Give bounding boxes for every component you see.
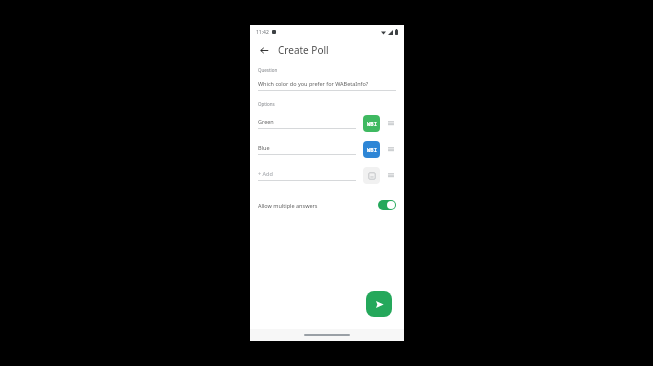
staticText: Options xyxy=(258,101,275,107)
staticText: Create Poll xyxy=(278,43,329,57)
button[interactable]: + Add xyxy=(258,164,396,186)
button[interactable]: Reorder option xyxy=(386,141,396,157)
staticText: Blue xyxy=(258,144,270,151)
staticText: WBI xyxy=(367,146,377,153)
button[interactable]: Send poll xyxy=(366,291,392,317)
button[interactable]: Choose sticker xyxy=(363,167,380,184)
staticText: + Add xyxy=(258,170,273,177)
staticText: Question xyxy=(258,67,278,73)
staticText: Green xyxy=(258,118,274,125)
staticText: Which color do you prefer for WABetaInfo… xyxy=(258,80,369,87)
button[interactable]: Reorder option xyxy=(386,167,396,183)
button[interactable]: Choose sticker xyxy=(363,141,380,158)
button[interactable]: Back xyxy=(256,42,272,58)
button[interactable]: Reorder option xyxy=(386,115,396,131)
button[interactable]: Allow multiple answers xyxy=(258,194,396,216)
staticText: Allow multiple answers xyxy=(258,202,378,209)
button[interactable]: Which color do you prefer for WABetaInfo… xyxy=(258,80,396,91)
button[interactable]: Allow multiple answers toggle xyxy=(378,200,396,210)
button[interactable]: Choose sticker xyxy=(363,115,380,132)
staticText: 11:42 xyxy=(256,29,269,36)
staticText: WBI xyxy=(367,120,377,127)
button[interactable]: Blue xyxy=(258,138,396,160)
button[interactable]: Green xyxy=(258,112,396,134)
